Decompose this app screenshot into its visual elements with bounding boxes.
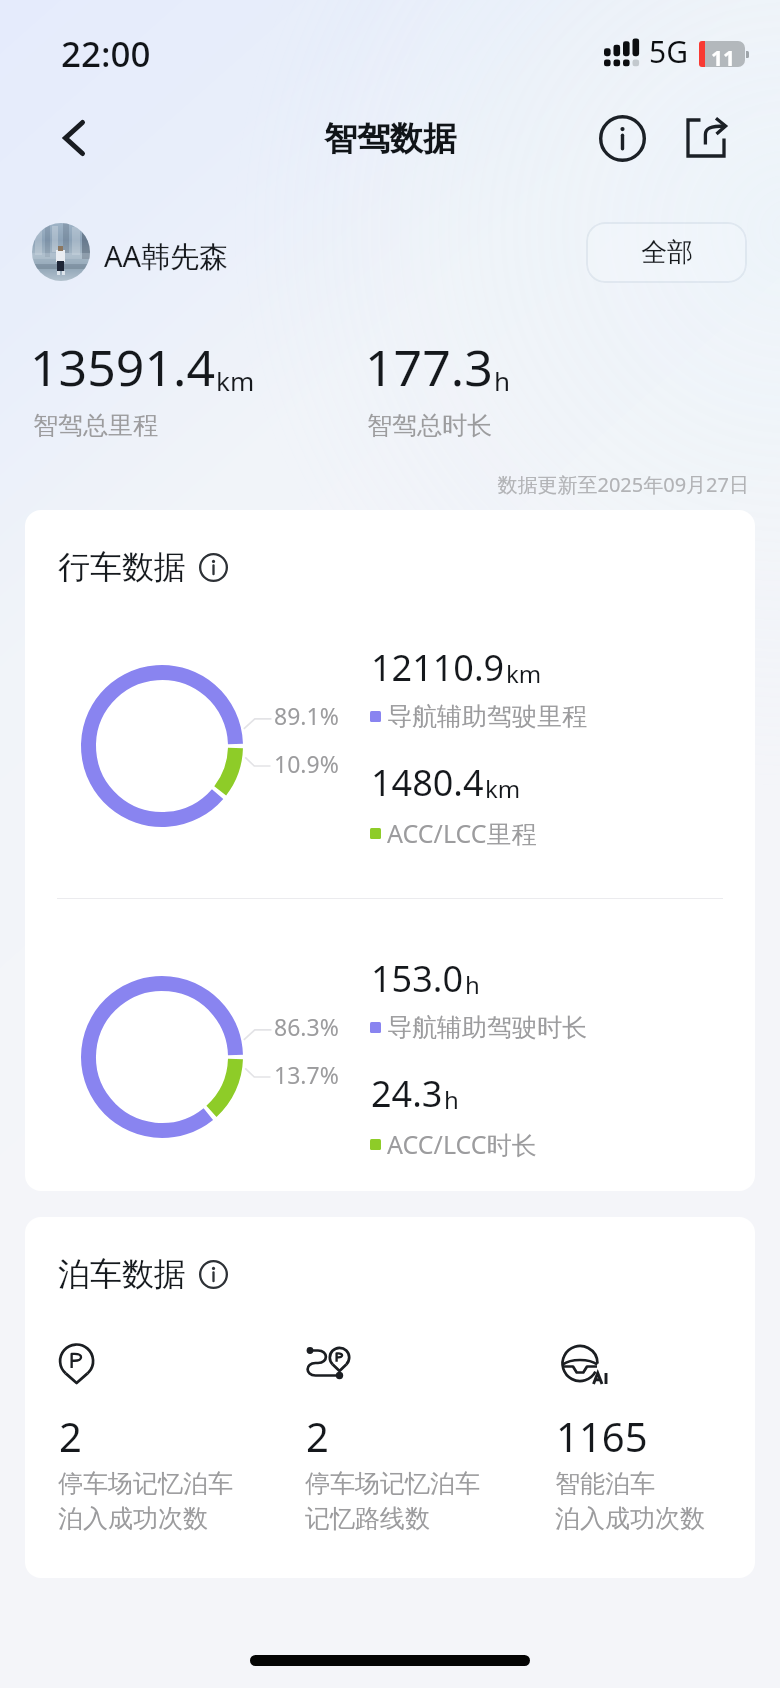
staticText: 13591.4 bbox=[30, 333, 215, 401]
staticText: 11 bbox=[711, 44, 736, 70]
staticText: 89.1% bbox=[274, 700, 339, 731]
button[interactable]: Driving data info bbox=[194, 548, 232, 586]
button[interactable]: Back bbox=[40, 104, 108, 172]
staticText: 24.3 bbox=[371, 1069, 443, 1118]
staticText: 泊车数据 bbox=[58, 1254, 186, 1294]
staticText: 行车数据 bbox=[58, 547, 186, 587]
staticText: 1165 bbox=[556, 1409, 648, 1463]
staticText: ACC/LCC时长 bbox=[387, 1127, 537, 1161]
staticText: h bbox=[444, 1083, 459, 1116]
staticText: h bbox=[465, 968, 480, 1001]
staticText: 导航辅助驾驶时长 bbox=[387, 1012, 587, 1043]
staticText: 13.7% bbox=[274, 1059, 339, 1090]
staticText: h bbox=[494, 363, 511, 398]
staticText: 177.3 bbox=[365, 333, 493, 401]
staticText: 153.0 bbox=[371, 954, 464, 1003]
staticText: 智能泊车 泊入成功次数 bbox=[555, 1468, 705, 1535]
staticText: 5G bbox=[649, 31, 688, 72]
button[interactable]: Share bbox=[672, 104, 740, 172]
staticText: 导航辅助驾驶里程 bbox=[387, 701, 587, 732]
staticText: 智驾总里程 bbox=[33, 410, 158, 441]
staticText: 智驾数据 bbox=[0, 118, 780, 160]
button[interactable]: Info bbox=[588, 104, 656, 172]
staticText: km bbox=[216, 363, 255, 398]
staticText: 智驾总时长 bbox=[367, 410, 492, 441]
staticText: 22:00 bbox=[61, 30, 151, 78]
staticText: km bbox=[506, 657, 542, 690]
staticText: 86.3% bbox=[274, 1011, 339, 1042]
staticText: 2 bbox=[59, 1409, 82, 1463]
staticText: 全部 bbox=[641, 236, 693, 269]
staticText: AA韩先森 bbox=[104, 236, 229, 276]
staticText: 1480.4 bbox=[371, 758, 484, 807]
staticText: 停车场记忆泊车 记忆路线数 bbox=[305, 1468, 480, 1535]
staticText: 数据更新至2025年09月27日 bbox=[0, 471, 749, 498]
staticText: 2 bbox=[306, 1409, 329, 1463]
staticText: 12110.9 bbox=[371, 643, 505, 692]
staticText: km bbox=[485, 772, 521, 805]
staticText: 停车场记忆泊车 泊入成功次数 bbox=[58, 1468, 233, 1535]
staticText: 10.9% bbox=[274, 748, 339, 779]
button[interactable]: 全部 bbox=[586, 222, 747, 283]
button[interactable]: Parking data info bbox=[194, 1255, 232, 1293]
staticText: ACC/LCC里程 bbox=[387, 816, 537, 850]
